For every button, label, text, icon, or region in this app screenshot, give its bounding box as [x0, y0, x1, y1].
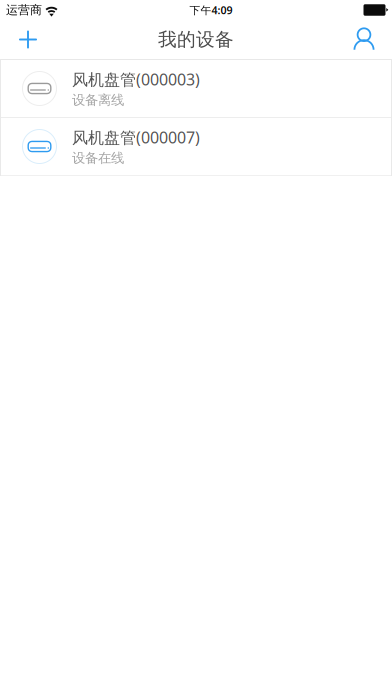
button[interactable]: 风机盘管(000003) — [0, 60, 392, 117]
button[interactable]: 风机盘管(000007) — [0, 118, 392, 175]
button[interactable]: Add device — [6, 19, 50, 59]
staticText: 下午4:09 — [189, 3, 232, 17]
staticText: 设备在线 — [72, 150, 124, 166]
staticText: 我的设备 — [158, 28, 234, 51]
staticText: 风机盘管(000007) — [72, 127, 200, 148]
staticText: 风机盘管(000003) — [72, 69, 200, 90]
button[interactable]: Account — [342, 19, 386, 59]
staticText: 设备离线 — [72, 92, 124, 108]
staticText: 运营商 — [6, 3, 42, 17]
